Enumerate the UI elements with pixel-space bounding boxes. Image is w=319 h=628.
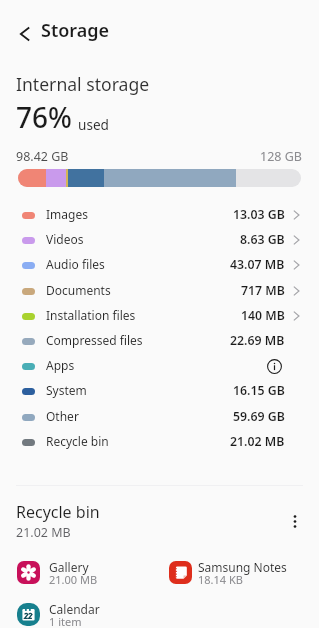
staticText: 59.69 GB bbox=[233, 408, 285, 425]
staticText: Images bbox=[46, 206, 88, 222]
staticText: 8.63 GB bbox=[240, 231, 285, 248]
button[interactable]: Calendar bbox=[0, 596, 152, 628]
button[interactable]: Documents bbox=[0, 276, 319, 301]
button[interactable]: Samsung Notes bbox=[148, 554, 300, 595]
staticText: 21.02 MB bbox=[230, 433, 285, 450]
staticText: 128 GB bbox=[260, 148, 302, 165]
staticText: 13.03 GB bbox=[233, 206, 285, 223]
staticText: Videos bbox=[46, 231, 84, 247]
button[interactable]: Recycle bin bbox=[0, 426, 319, 451]
staticText: Other bbox=[46, 408, 79, 424]
staticText: 717 MB bbox=[241, 282, 285, 299]
button[interactable]: Videos bbox=[0, 226, 319, 251]
button[interactable]: Installation files bbox=[0, 301, 319, 326]
staticText: 21.00 MB bbox=[49, 572, 98, 587]
staticText: Samsung Notes bbox=[198, 559, 287, 575]
staticText: 43.07 MB bbox=[230, 256, 285, 273]
button[interactable]: Compressed files bbox=[0, 326, 319, 351]
staticText: Gallery bbox=[49, 559, 89, 575]
staticText: 22.69 MB bbox=[230, 332, 285, 349]
button[interactable]: Apps bbox=[0, 351, 319, 376]
staticText: Storage bbox=[41, 18, 110, 43]
staticText: Compressed files bbox=[46, 332, 143, 348]
staticText: 18.14 KB bbox=[198, 572, 243, 587]
staticText: Internal storage bbox=[16, 72, 150, 96]
button[interactable]: Audio files bbox=[0, 251, 319, 276]
staticText: 76% bbox=[16, 98, 72, 136]
button[interactable]: Navigate up bbox=[0, 0, 41, 60]
staticText: System bbox=[46, 382, 87, 398]
staticText: used bbox=[78, 115, 109, 134]
button[interactable]: Apps storage info bbox=[267, 359, 282, 374]
button[interactable]: System bbox=[0, 376, 319, 401]
staticText: 1 item bbox=[49, 614, 82, 628]
button[interactable]: Other bbox=[0, 401, 319, 426]
button[interactable]: More options bbox=[279, 505, 311, 537]
staticText: 140 MB bbox=[241, 307, 285, 324]
staticText: 21.02 MB bbox=[16, 524, 71, 541]
staticText: Installation files bbox=[46, 307, 136, 323]
staticText: Recycle bin bbox=[16, 501, 100, 523]
staticText: Audio files bbox=[46, 256, 105, 272]
staticText: Documents bbox=[46, 282, 111, 298]
staticText: 16.15 GB bbox=[233, 382, 285, 399]
button[interactable]: Images bbox=[0, 201, 319, 226]
staticText: 98.42 GB bbox=[16, 148, 69, 165]
staticText: Recycle bin bbox=[46, 433, 109, 449]
staticText: Apps bbox=[46, 357, 75, 373]
button[interactable]: Gallery bbox=[0, 554, 152, 595]
staticText: Calendar bbox=[49, 601, 100, 617]
